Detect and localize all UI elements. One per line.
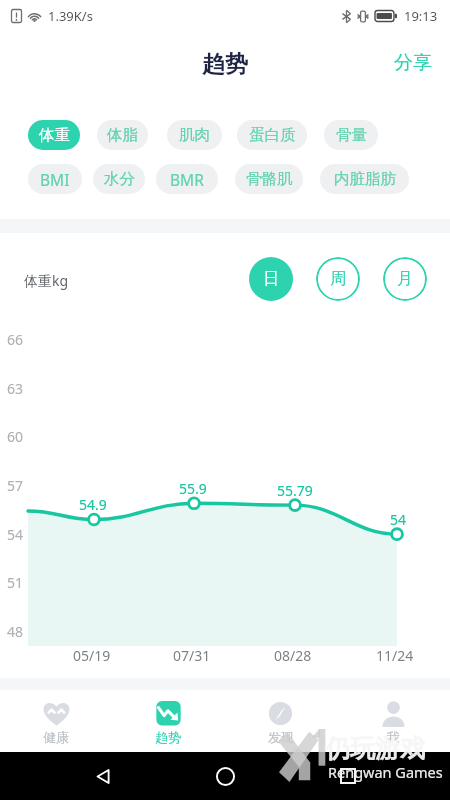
button[interactable]: 体脂 <box>97 120 148 150</box>
staticText: 55.79 <box>277 481 313 500</box>
staticText: 趋势 <box>202 50 248 79</box>
staticText: 54.9 <box>79 495 107 514</box>
button[interactable]: 日 <box>249 257 293 301</box>
staticText: 08/28 <box>274 646 312 665</box>
staticText: BMI <box>40 169 70 190</box>
button[interactable]: 分享 <box>378 39 450 87</box>
staticText: 我 <box>387 729 400 745</box>
staticText: 体脂 <box>107 125 138 145</box>
staticText: 54 <box>7 525 24 544</box>
staticText: 仍玩游戏 <box>325 733 425 764</box>
button[interactable]: 我 <box>337 690 450 752</box>
button[interactable]: 骨骼肌 <box>235 164 303 194</box>
staticText: 66 <box>7 330 24 349</box>
staticText: 1.39K/s <box>48 7 93 25</box>
staticText: Rengwan Games <box>328 762 443 782</box>
staticText: 55.9 <box>179 479 207 498</box>
button[interactable]: BMI <box>28 164 82 194</box>
button[interactable]: 健康 <box>0 690 112 752</box>
staticText: 月 <box>397 269 413 289</box>
staticText: 发现 <box>268 729 294 745</box>
staticText: 内脏脂肪 <box>334 169 396 189</box>
button[interactable]: 周 <box>316 257 360 301</box>
button[interactable]: Back <box>83 756 123 796</box>
staticText: 水分 <box>104 169 135 189</box>
staticText: 分享 <box>394 51 432 75</box>
button[interactable]: 骨量 <box>324 120 378 150</box>
staticText: 蛋白质 <box>249 125 296 145</box>
staticText: 57 <box>7 476 24 495</box>
staticText: 51 <box>7 573 24 592</box>
staticText: 健康 <box>43 729 69 745</box>
staticText: 07/31 <box>173 646 211 665</box>
staticText: 骨骼肌 <box>246 169 293 189</box>
staticText: 肌肉 <box>179 125 210 145</box>
staticText: 骨量 <box>336 125 367 145</box>
staticText: 05/19 <box>73 646 111 665</box>
staticText: 60 <box>7 427 24 446</box>
button[interactable]: Home <box>205 756 245 796</box>
button[interactable]: Recents <box>328 756 368 796</box>
button[interactable]: 内脏脂肪 <box>320 164 409 194</box>
button[interactable]: 蛋白质 <box>237 120 307 150</box>
staticText: 体重 <box>39 125 70 145</box>
staticText: 63 <box>7 379 24 398</box>
staticText: BMR <box>170 169 204 190</box>
button[interactable]: 肌肉 <box>167 120 222 150</box>
staticText: 周 <box>330 269 346 289</box>
staticText: 48 <box>7 622 24 641</box>
button[interactable]: 趋势 <box>112 690 224 752</box>
staticText: 54 <box>390 510 407 529</box>
button[interactable]: 体重 <box>28 120 80 150</box>
button[interactable]: 月 <box>383 257 427 301</box>
staticText: 日 <box>263 269 279 289</box>
staticText: 19:13 <box>404 7 438 25</box>
staticText: 体重kg <box>24 271 69 290</box>
button[interactable]: BMR <box>156 164 218 194</box>
staticText: 11/24 <box>376 646 414 665</box>
staticText: 趋势 <box>155 729 181 745</box>
button[interactable]: 水分 <box>93 164 145 194</box>
button[interactable]: 发现 <box>224 690 337 752</box>
